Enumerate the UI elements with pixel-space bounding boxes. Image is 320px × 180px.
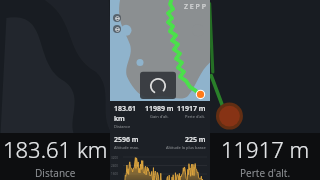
staticText: Perte d'alt.: [240, 166, 291, 180]
button[interactable]: 225 m: [160, 135, 206, 150]
button[interactable]: 183.61 km: [114, 104, 144, 129]
staticText: Perte d'alt.: [185, 114, 206, 119]
button[interactable]: 11917 m: [175, 104, 206, 119]
staticText: Z E P P: [184, 2, 206, 12]
staticText: 2596 m: [114, 135, 139, 145]
staticText: Altitude la plus basse: [166, 145, 206, 150]
button[interactable]: Map layers: [113, 14, 121, 22]
staticText: Altitude max.: [114, 145, 139, 150]
staticText: 183.61 km: [114, 104, 144, 124]
staticText: 11989 m: [145, 104, 174, 114]
button[interactable]: 183.61 km: [0, 133, 110, 180]
button[interactable]: 11989 m: [144, 104, 175, 119]
button[interactable]: 11917 m: [210, 133, 320, 180]
button[interactable]: Locate me: [113, 25, 121, 33]
staticText: Gain d'alt.: [150, 114, 169, 119]
staticText: 11917 m: [177, 104, 206, 114]
staticText: 11917 m: [221, 134, 310, 164]
staticText: 225 m: [185, 135, 206, 145]
staticText: 1600: [111, 172, 118, 176]
staticText: 3200: [111, 156, 118, 160]
button[interactable]: 2596 m: [114, 135, 160, 150]
staticText: Distance: [35, 166, 76, 180]
staticText: Distance: [114, 124, 131, 129]
staticText: 183.61 km: [3, 134, 108, 164]
staticText: 2400: [111, 164, 118, 168]
